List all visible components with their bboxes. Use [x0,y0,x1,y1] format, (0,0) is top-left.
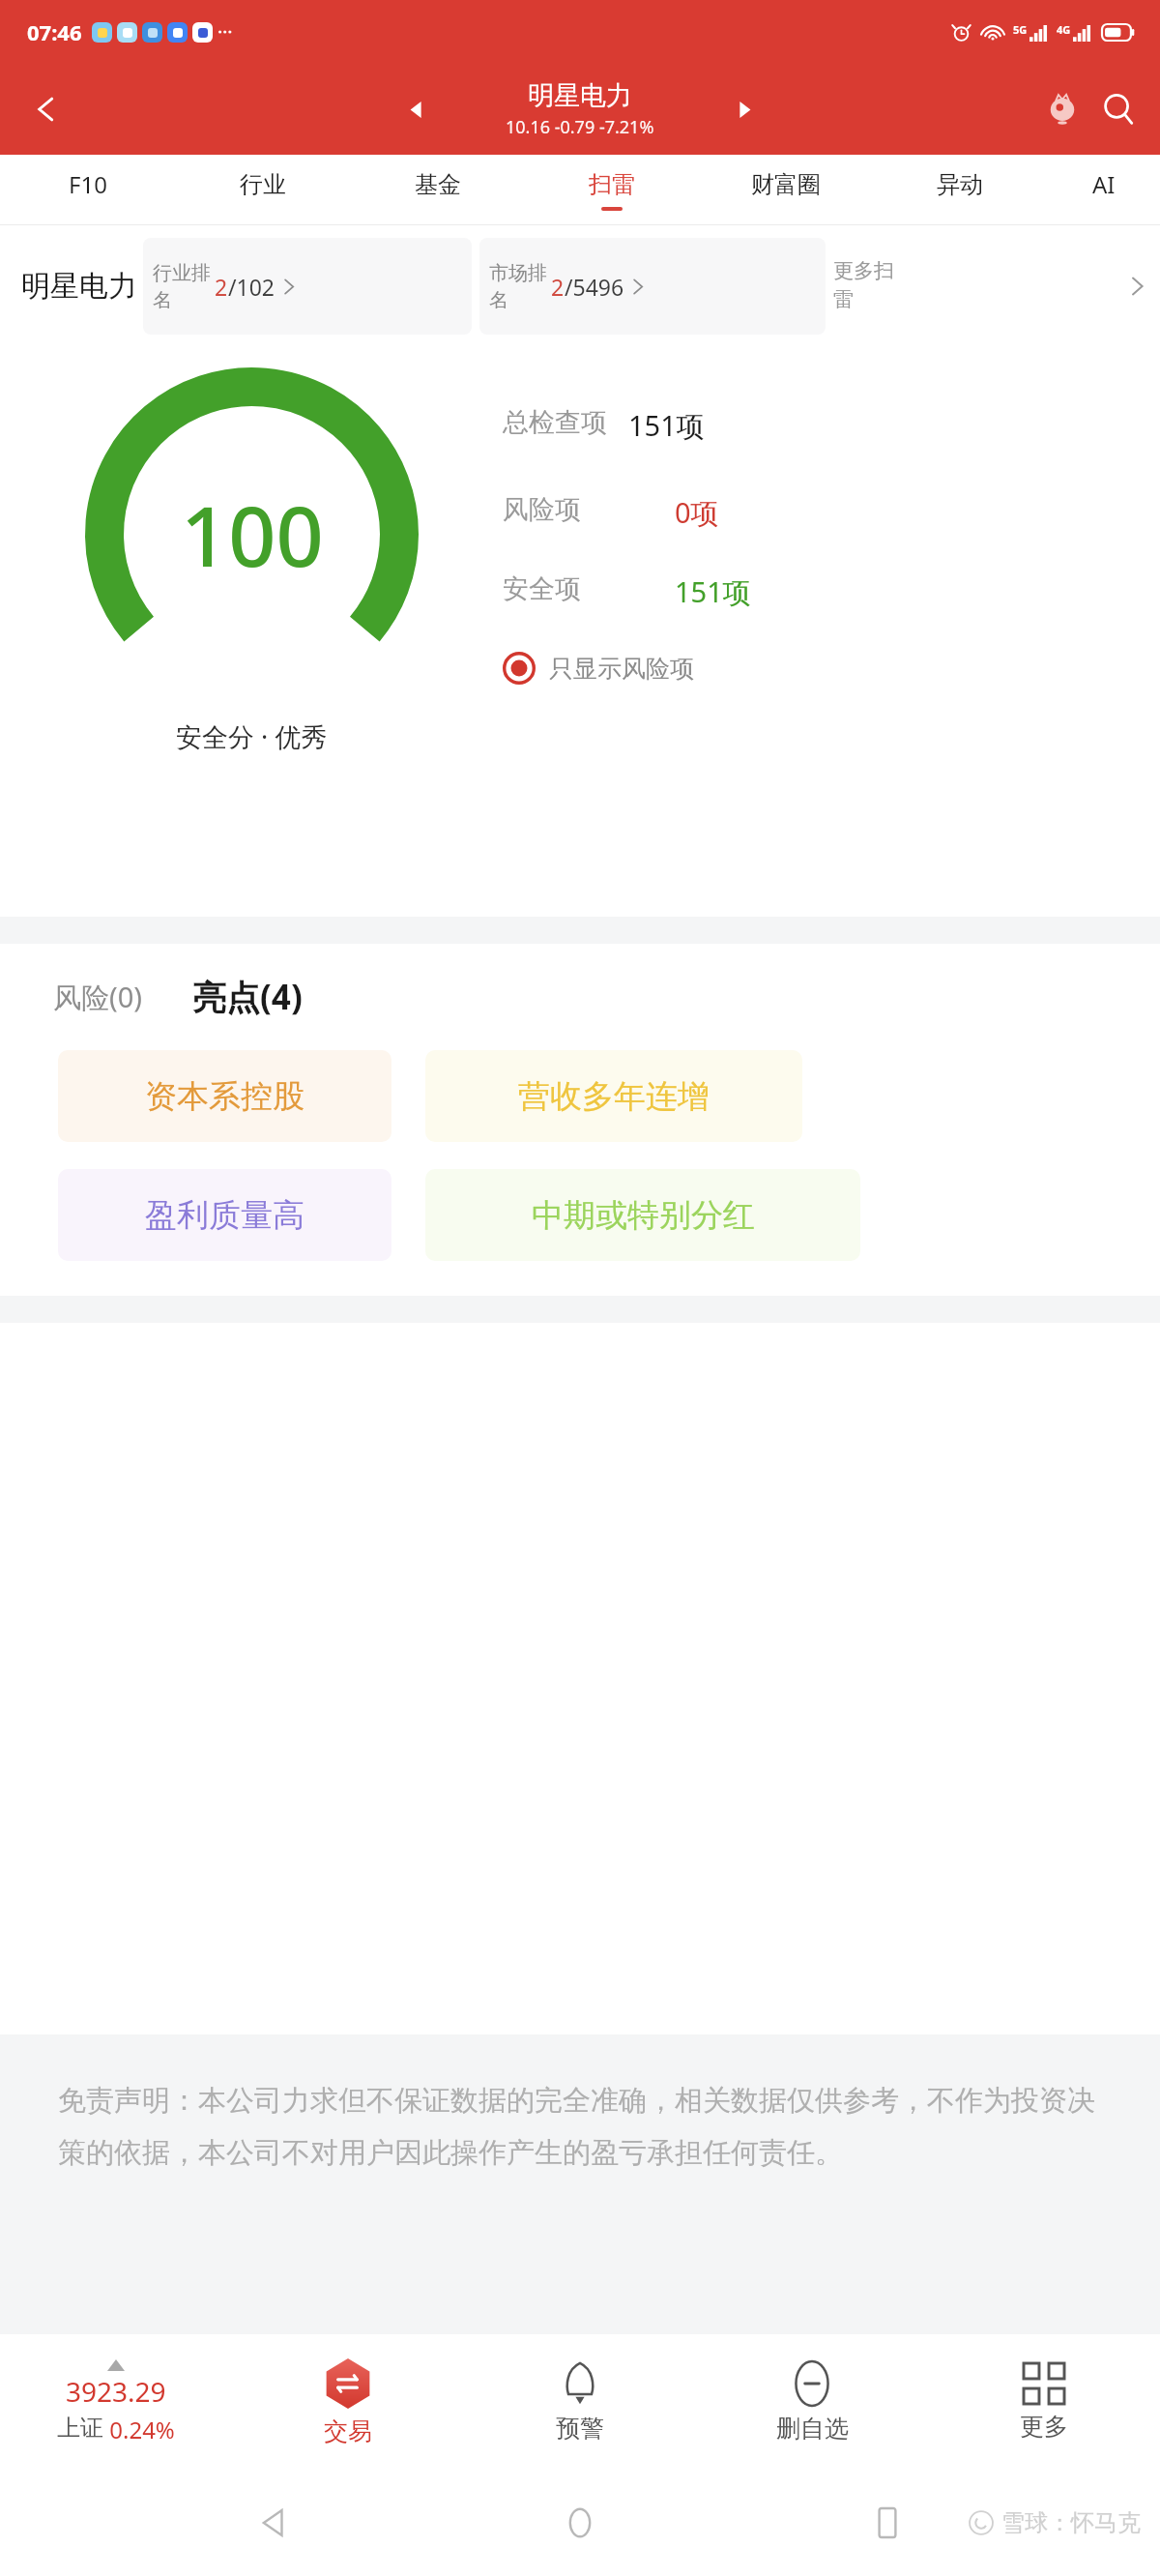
button[interactable]: 风险(0) [53,978,142,1016]
button[interactable]: 营收多年连增 [425,1050,802,1142]
staticText: 0项 [675,493,719,532]
button[interactable]: 更多扫雷 [833,258,1146,313]
button[interactable]: Back [19,82,73,136]
staticText: 扫雷 [589,170,635,199]
button[interactable]: Recents [854,2489,921,2557]
staticText: 07:46 [27,17,82,46]
button[interactable]: 市场排名 [479,238,826,335]
staticText: 盈利质量高 [145,1195,304,1236]
staticText: 更多 [1020,2412,1068,2442]
button[interactable]: 基金 [350,155,525,225]
staticText: 预警 [556,2414,604,2444]
staticText: 更多扫雷 [833,258,899,313]
button[interactable]: 交易 [232,2334,464,2470]
button[interactable]: F10 [0,155,175,225]
staticText: 安全分 · 优秀 [176,718,328,754]
staticText: 亮点(4) [192,974,303,1020]
button[interactable]: 更多 [928,2334,1160,2470]
button[interactable]: Next stock [722,87,767,132]
button[interactable]: Home [546,2489,614,2557]
staticText: 总检查项 [503,406,607,439]
staticText: 市场排名 [489,261,549,312]
staticText: /5496 [565,272,624,302]
button[interactable]: 3923.29 [0,2334,232,2470]
button[interactable]: 行业 [175,155,350,225]
staticText: 明星电力 [21,268,137,305]
staticText: 风险(0) [53,978,142,1016]
staticText: 151项 [675,572,751,611]
staticText: 3923.29 [66,2373,166,2410]
staticText: 删自选 [776,2414,849,2444]
button[interactable]: 预警 [464,2334,696,2470]
button[interactable]: AI [1047,155,1160,225]
staticText: 雪球：怀马克 [1001,2508,1141,2537]
staticText: AI [1092,168,1116,200]
button[interactable]: 资本系控股 [58,1050,391,1142]
button[interactable]: Search [1090,81,1146,137]
staticText: 资本系控股 [145,1076,304,1117]
staticText: 0.24% [103,2414,175,2445]
staticText: 交易 [324,2416,372,2446]
button[interactable]: 亮点(4) [192,974,303,1020]
staticText: 2 [551,272,565,302]
staticText: 只显示风险项 [549,654,694,684]
button[interactable]: Back [240,2489,307,2557]
staticText: 2 [215,272,228,302]
staticText: 5G [1013,22,1028,37]
button[interactable]: 异动 [873,155,1047,225]
staticText: 上证 [57,2414,103,2443]
staticText: 财富圈 [751,170,821,199]
staticText: 营收多年连增 [518,1076,710,1117]
staticText: 100 [181,478,324,591]
button[interactable]: 删自选 [696,2334,928,2470]
staticText: 行业排名 [153,261,213,312]
staticText: 10.16 -0.79 -7.21% [506,115,654,139]
staticText: 免责声明：本公司力求但不保证数据的完全准确，相关数据仅供参考，不作为投资决策的依… [58,2083,1116,2171]
button[interactable]: 行业排名 [143,238,472,335]
staticText: 安全项 [503,572,665,605]
staticText: 中期或特别分红 [532,1195,755,1236]
button[interactable]: 中期或特别分红 [425,1169,860,1261]
staticText: 异动 [937,170,983,199]
staticText: 风险项 [503,493,665,526]
button[interactable]: 扫雷 [525,155,699,225]
button[interactable]: Assistant [1034,81,1090,137]
staticText: 基金 [415,170,461,199]
staticText: /102 [228,272,275,302]
button[interactable]: 只显示风险项 [503,652,694,685]
staticText: 151项 [628,406,705,445]
button[interactable]: 财富圈 [699,155,873,225]
staticText: 行业 [240,170,286,199]
staticText: 4G [1057,22,1071,37]
button[interactable]: 盈利质量高 [58,1169,391,1261]
button[interactable]: Previous stock [393,87,438,132]
staticText: F10 [69,168,107,200]
staticText: 明星电力 [528,79,632,112]
